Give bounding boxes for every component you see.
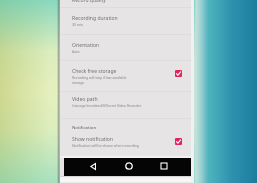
staticText: Recording duration: [72, 15, 118, 22]
staticText: Auto: [72, 49, 80, 54]
button[interactable]: Show notification: [60, 133, 191, 155]
staticText: Check free storage: [72, 68, 117, 75]
button[interactable]: Recording duration: [60, 8, 191, 34]
button[interactable]: Toggle setting: [175, 70, 182, 77]
staticText: Show notification: [72, 136, 114, 143]
staticText: Record quality: [72, 0, 106, 4]
staticText: Notification: [72, 124, 97, 130]
button[interactable]: Check free storage: [60, 61, 191, 91]
button[interactable]: Toggle setting: [175, 138, 182, 145]
staticText: /storage/emulated/0/Secret Video Recorde…: [72, 103, 142, 108]
button[interactable]: Back: [85, 158, 101, 174]
staticText: Video path: [72, 96, 98, 103]
button[interactable]: Orientation: [60, 35, 191, 60]
button[interactable]: Recent apps: [156, 158, 172, 174]
staticText: 30 min: [72, 22, 83, 27]
button[interactable]: Home: [121, 158, 137, 174]
staticText: Notification will be shown when recordin…: [72, 143, 139, 148]
staticText: Recording will stop if low available sto…: [72, 75, 127, 85]
button[interactable]: Video path: [60, 92, 191, 118]
staticText: Orientation: [72, 42, 100, 49]
